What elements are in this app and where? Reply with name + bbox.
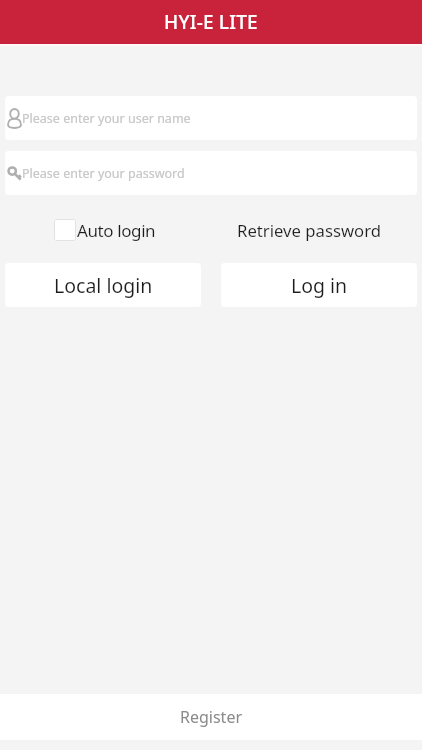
staticText: Local login — [54, 272, 153, 299]
staticText: Log in — [291, 272, 348, 299]
staticText: Auto login — [77, 219, 156, 242]
other: Password — [7, 163, 22, 184]
staticText: Register — [180, 706, 243, 728]
button[interactable]: Register — [0, 694, 422, 740]
button[interactable]: Log in — [221, 263, 417, 307]
staticText: HYI-E LITE — [164, 9, 258, 35]
button[interactable]: Password — [5, 151, 417, 195]
button[interactable]: User name — [5, 96, 417, 140]
button[interactable]: Local login — [5, 263, 201, 307]
staticText: Retrieve password — [237, 219, 381, 242]
staticText: Please enter your user name — [22, 110, 191, 127]
other: User name — [7, 108, 22, 129]
button[interactable]: Auto login — [0, 216, 210, 244]
button[interactable]: Retrieve password — [210, 216, 422, 244]
staticText: Please enter your password — [22, 165, 185, 182]
